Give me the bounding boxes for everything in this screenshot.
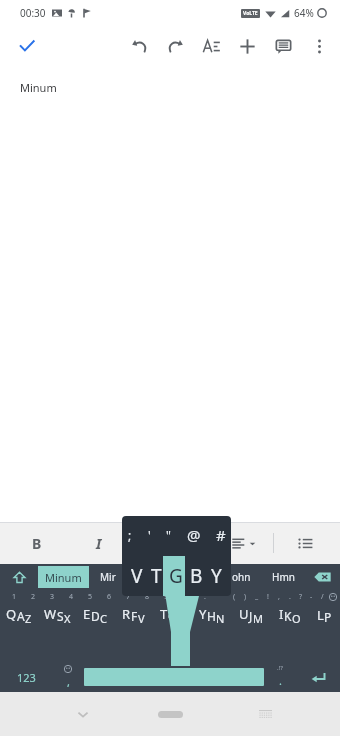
button[interactable]: R — [114, 604, 153, 626]
staticText: Z — [25, 611, 32, 626]
staticText: U — [239, 605, 249, 623]
staticText: P — [324, 609, 332, 625]
staticText: 5 — [88, 592, 93, 602]
staticText: R — [122, 605, 131, 623]
staticText: , — [67, 674, 70, 689]
button[interactable]: W — [38, 604, 76, 626]
button[interactable]: Switch keyboard — [250, 699, 280, 729]
staticText: . — [289, 592, 291, 602]
staticText: Y — [211, 563, 222, 589]
button[interactable]: Y — [192, 604, 231, 626]
button[interactable]: Paragraph alignment — [229, 528, 259, 558]
button[interactable]: Minum — [38, 566, 89, 588]
staticText: 64% — [294, 6, 314, 20]
staticText: ) — [244, 592, 247, 602]
staticText: V — [138, 611, 145, 626]
button[interactable]: Bold — [22, 528, 52, 558]
staticText: F — [131, 608, 138, 624]
staticText: ? — [299, 592, 303, 602]
button[interactable]: I — [270, 604, 309, 626]
staticText: B — [190, 563, 203, 589]
staticText: " — [166, 527, 171, 543]
button[interactable]: Period — [264, 662, 296, 692]
button[interactable]: Insert — [229, 28, 265, 64]
staticText: - — [310, 592, 313, 602]
staticText: S — [57, 608, 64, 624]
staticText: T — [160, 605, 168, 623]
staticText: I — [96, 534, 102, 553]
staticText: , — [278, 592, 280, 602]
staticText: V — [131, 563, 143, 589]
button[interactable]: Key preview G — [124, 558, 229, 594]
staticText: ' — [148, 527, 151, 543]
button[interactable]: Comma — [52, 662, 84, 692]
staticText: 4 — [69, 592, 74, 602]
staticText: 123 — [17, 670, 36, 685]
staticText: D — [91, 608, 100, 624]
staticText: 00:30 — [20, 6, 46, 20]
button[interactable]: Redo — [157, 28, 193, 64]
button[interactable]: More options — [301, 28, 337, 64]
staticText: ; — [128, 527, 132, 543]
staticText: / — [321, 592, 324, 602]
button[interactable]: Underline — [146, 528, 176, 558]
button[interactable]: 123 — [0, 662, 52, 692]
staticText: K — [284, 608, 292, 624]
staticText: ( — [233, 592, 236, 602]
staticText: 2 — [31, 592, 36, 602]
button[interactable]: Text formatting — [193, 28, 229, 64]
staticText: 3 — [50, 592, 55, 602]
button[interactable]: ohn — [220, 564, 262, 590]
button[interactable]: Hide keyboard — [68, 699, 98, 729]
staticText: @ — [187, 525, 201, 545]
button[interactable]: Hmn — [262, 564, 304, 590]
staticText: Minum — [45, 570, 82, 585]
staticText: U — [157, 533, 167, 551]
staticText: Y — [199, 605, 207, 623]
button[interactable]: Enter — [296, 662, 340, 692]
button[interactable]: Italic — [84, 528, 114, 558]
button[interactable]: Q — [0, 604, 38, 626]
staticText: L — [317, 606, 324, 624]
button[interactable]: E — [76, 604, 114, 626]
staticText: M — [253, 611, 263, 626]
staticText: 6 — [107, 592, 112, 602]
staticText: Q — [6, 605, 17, 623]
staticText: 7 — [126, 592, 131, 602]
staticText: E — [83, 605, 91, 623]
staticText: # — [216, 525, 226, 545]
staticText: A — [17, 608, 25, 624]
button[interactable]: U — [231, 604, 270, 626]
staticText: I — [279, 605, 284, 623]
staticText: Hmn — [272, 570, 295, 584]
staticText: 1 — [12, 592, 17, 602]
staticText: G — [169, 563, 183, 589]
staticText: . — [204, 592, 206, 602]
staticText: X — [64, 611, 71, 626]
staticText: 0 — [183, 592, 188, 602]
staticText: 9 — [164, 592, 169, 602]
staticText: Minum — [20, 80, 57, 95]
button[interactable]: Bulleted list — [290, 528, 320, 558]
staticText: _ — [255, 592, 259, 602]
button[interactable]: Backspace — [304, 564, 340, 590]
staticText: G — [168, 608, 177, 624]
button[interactable]: Home — [158, 711, 183, 718]
staticText: N — [216, 611, 225, 626]
staticText: VoLTE — [243, 10, 258, 17]
button[interactable]: Done — [10, 29, 44, 63]
button[interactable]: Undo — [121, 28, 157, 64]
button[interactable]: Comments — [265, 28, 301, 64]
staticText: .!? — [277, 664, 283, 672]
staticText: O — [292, 611, 301, 626]
button[interactable]: Mir — [89, 564, 127, 590]
staticText: W — [44, 605, 57, 623]
staticText: C — [100, 611, 107, 626]
button[interactable]: T — [153, 604, 192, 626]
button[interactable]: L — [309, 604, 340, 626]
staticText: B — [32, 534, 42, 553]
staticText: ! — [267, 592, 269, 602]
staticText: 8 — [145, 592, 150, 602]
button[interactable]: Shift — [0, 564, 38, 590]
